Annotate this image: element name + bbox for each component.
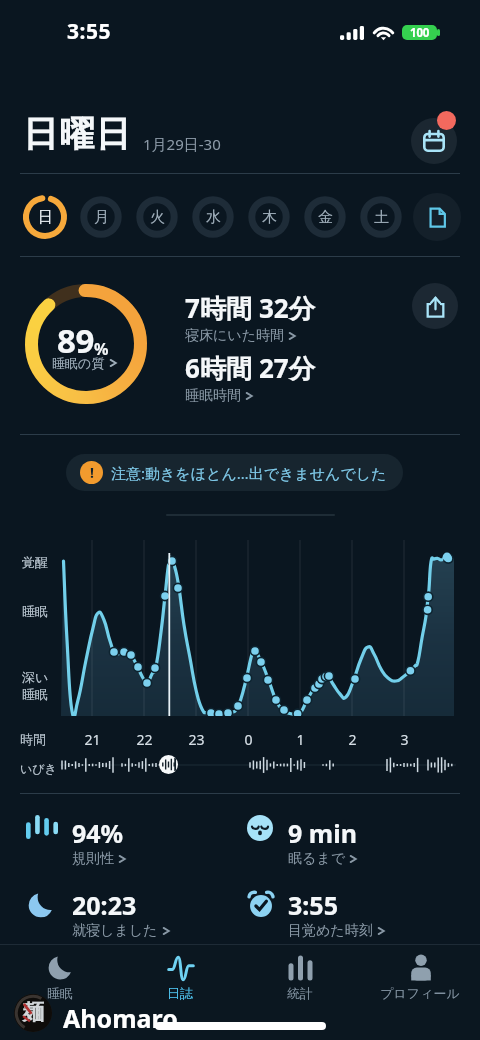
staticText: %	[94, 338, 109, 360]
staticText: 眠るまで	[288, 850, 345, 868]
staticText: 32分	[259, 290, 315, 326]
staticText: 3:55	[67, 17, 111, 46]
staticText: 木	[262, 208, 277, 227]
staticText: 規則性	[72, 850, 114, 868]
button[interactable]: 木	[245, 193, 293, 241]
staticText: 日曜日	[23, 112, 132, 156]
staticText: 100	[410, 25, 430, 40]
staticText: 23	[188, 730, 205, 749]
staticText: 睡眠	[47, 985, 73, 1001]
staticText: 土	[374, 208, 389, 227]
button[interactable]: 水	[189, 193, 237, 241]
staticText: 深い	[22, 669, 49, 685]
staticText: 0	[244, 730, 253, 749]
staticText: 日誌	[167, 985, 193, 1001]
staticText: 3	[400, 730, 409, 749]
staticText: 睡眠	[22, 686, 48, 702]
staticText: 1	[296, 730, 305, 749]
staticText: !	[90, 463, 94, 482]
staticText: 9 min	[288, 816, 357, 850]
button[interactable]: 統計	[240, 948, 360, 1002]
staticText: 睡眠時間	[185, 387, 241, 405]
staticText: 水	[206, 208, 221, 227]
button[interactable]: 土	[357, 193, 405, 241]
staticText: 1月29日-30	[143, 134, 221, 154]
button[interactable]: プロフィール	[360, 948, 480, 1002]
button[interactable]: !	[66, 454, 403, 491]
staticText: 覚醒	[22, 554, 48, 570]
staticText: 6時間	[185, 350, 252, 386]
button[interactable]: Play snore audio	[159, 755, 178, 774]
button[interactable]: 7時間	[185, 290, 315, 345]
button[interactable]: 日	[21, 193, 69, 241]
staticText: 7時間	[185, 290, 252, 326]
button[interactable]: Calendar	[411, 118, 457, 164]
staticText: 21	[84, 730, 101, 749]
staticText: 27分	[259, 350, 315, 386]
staticText: 寝床にいた時間	[185, 327, 284, 345]
staticText: 時間	[20, 731, 46, 747]
button[interactable]: 月	[77, 193, 125, 241]
staticText: いびき	[20, 761, 57, 776]
button[interactable]: 火	[133, 193, 181, 241]
button[interactable]: 睡眠	[0, 948, 120, 1002]
staticText: 2	[348, 730, 357, 749]
staticText: Ahomaro	[63, 1001, 178, 1035]
staticText: 麺	[22, 999, 44, 1027]
staticText: 20:23	[72, 888, 137, 922]
staticText: 94%	[72, 816, 124, 850]
button[interactable]	[241, 807, 402, 853]
staticText: 金	[318, 208, 333, 227]
staticText: 睡眠	[22, 603, 48, 619]
staticText: 就寝しました	[72, 922, 158, 940]
button[interactable]: Notes	[413, 193, 461, 241]
staticText: 22	[136, 730, 153, 749]
button[interactable]: Share	[412, 283, 458, 329]
staticText: 月	[94, 208, 109, 227]
staticText: プロフィール	[380, 985, 460, 1001]
staticText: 注意:動きをほとん…出できませんでした	[111, 463, 387, 483]
staticText: 日	[38, 208, 53, 227]
staticText: 火	[150, 208, 165, 227]
button[interactable]	[25, 284, 147, 404]
button[interactable]	[21, 883, 186, 929]
button[interactable]	[20, 807, 186, 853]
button[interactable]: 金	[301, 193, 349, 241]
staticText: 目覚めた時刻	[288, 922, 373, 940]
staticText: 3:55	[288, 888, 338, 922]
button[interactable]: 6時間	[185, 350, 315, 405]
staticText: 睡眠の質	[52, 355, 105, 371]
button[interactable]: 日誌	[120, 948, 240, 1002]
staticText: 89	[57, 318, 94, 363]
staticText: 統計	[287, 985, 313, 1001]
button[interactable]	[240, 880, 402, 926]
